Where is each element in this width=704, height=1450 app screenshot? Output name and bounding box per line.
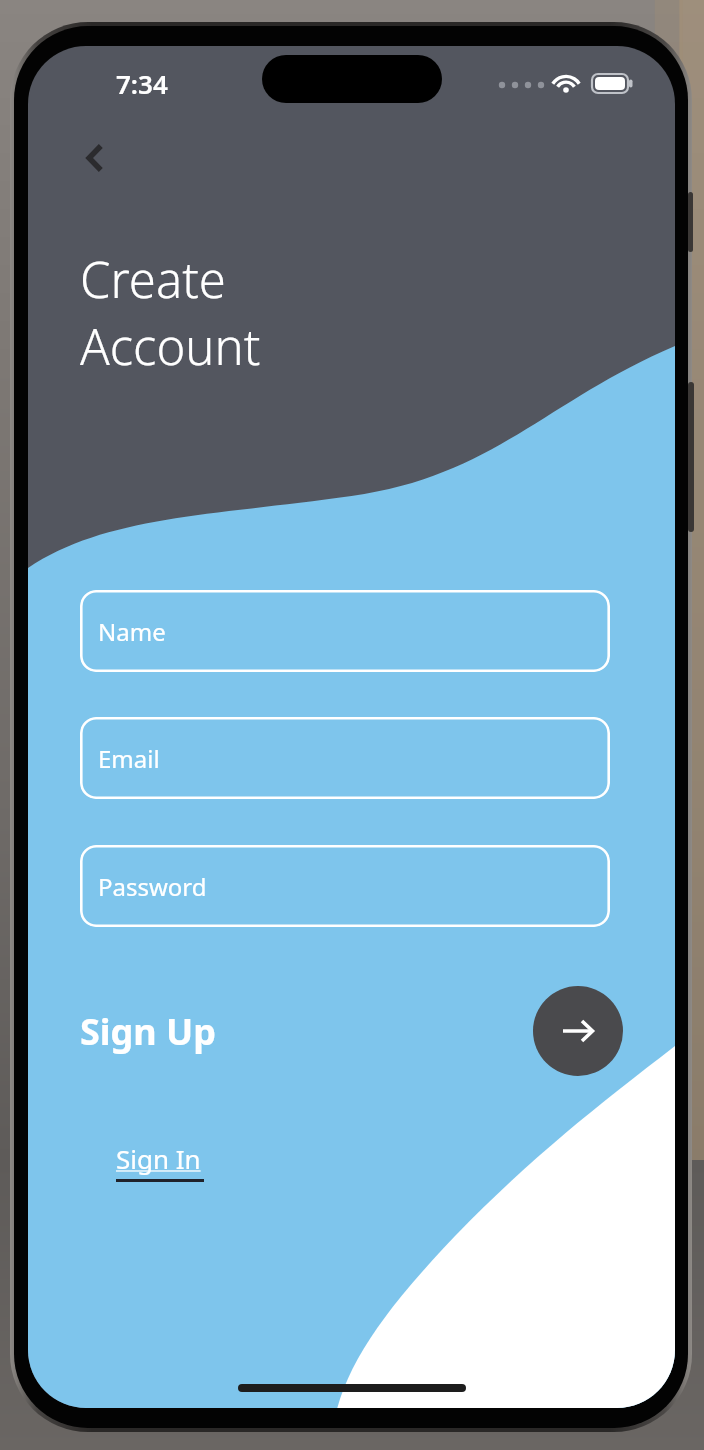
button[interactable]: Email	[80, 717, 610, 799]
staticText: Sign Up	[80, 1007, 217, 1056]
staticText: Name	[98, 615, 166, 648]
staticText: Email	[98, 742, 160, 775]
button[interactable]: Sign In	[116, 1141, 201, 1176]
staticText: Password	[98, 870, 207, 903]
staticText: Account	[80, 313, 261, 380]
button[interactable]: Submit sign up	[533, 986, 623, 1076]
button[interactable]: Back	[68, 130, 124, 186]
button[interactable]: Name	[80, 590, 610, 672]
staticText: Sign In	[116, 1141, 201, 1176]
staticText: Create	[80, 246, 226, 313]
button[interactable]: Password	[80, 845, 610, 927]
staticText: 7:34	[116, 66, 168, 101]
button[interactable]: Sign Up	[80, 1007, 217, 1056]
